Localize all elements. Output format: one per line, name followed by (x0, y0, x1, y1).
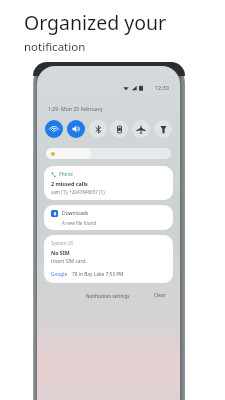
button[interactable] (46, 148, 171, 159)
button[interactable]: Airplane mode (132, 120, 150, 138)
staticText: Organized your (24, 9, 167, 36)
button[interactable]: Bluetooth (89, 120, 107, 138)
button[interactable]: Flashlight (154, 120, 172, 138)
button[interactable]: Sound (67, 120, 85, 138)
staticText: A new file found (62, 220, 97, 226)
staticText: Google (51, 271, 68, 278)
staticText: notification (24, 39, 86, 55)
staticText: sam (1), +2047846657 (1) (51, 189, 105, 195)
staticText: Insert SIM card. (51, 258, 87, 265)
staticText: Clear (154, 292, 166, 299)
staticText: 12:30 (155, 84, 169, 91)
staticText: System UI (51, 240, 73, 246)
button[interactable]: Notification settings (84, 291, 132, 301)
staticText: 1:29 Mon 25 February (48, 105, 103, 112)
staticText: Notification settings (86, 293, 130, 299)
button[interactable]: Wi-Fi (45, 120, 63, 138)
staticText: 78 in Bay Lake 7:53 PM (72, 271, 124, 278)
button[interactable]: Phone (44, 166, 173, 200)
button[interactable]: Clear (152, 290, 168, 301)
button[interactable]: Downloads (44, 205, 173, 230)
button[interactable]: System UI (44, 235, 173, 283)
staticText: 2 missed calls (51, 180, 88, 187)
button[interactable]: Mobile data (110, 120, 128, 138)
staticText: Downloads (62, 210, 89, 217)
staticText: No SIM (51, 249, 70, 256)
staticText: Phone (59, 171, 73, 177)
